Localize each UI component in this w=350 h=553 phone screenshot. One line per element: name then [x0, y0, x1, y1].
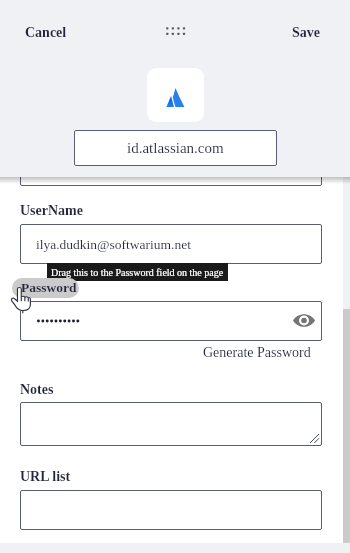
button[interactable]: Generate Password: [203, 345, 311, 361]
staticText: Save: [292, 25, 320, 41]
button[interactable]: [20, 150, 322, 186]
staticText: id.atlassian.com: [127, 140, 224, 157]
button[interactable]: Drag handle: [163, 18, 188, 43]
staticText: Drag this to the Password field on the p…: [51, 267, 224, 278]
button[interactable]: [20, 402, 322, 446]
button[interactable]: Password: [12, 278, 79, 298]
staticText: Cancel: [25, 25, 67, 41]
button[interactable]: [20, 490, 322, 530]
staticText: Password: [21, 280, 77, 295]
staticText: ilya.dudkin@softwarium.net: [36, 237, 191, 252]
staticText: URL list: [20, 469, 71, 485]
staticText: UserName: [20, 203, 83, 219]
staticText: Password: [20, 280, 78, 296]
button[interactable]: ilya.dudkin@softwarium.net: [20, 224, 322, 264]
button[interactable]: [147, 68, 204, 122]
button[interactable]: Show password: [20, 301, 322, 341]
button[interactable]: Save: [292, 25, 320, 41]
button[interactable]: Cancel: [25, 25, 67, 41]
button[interactable]: id.atlassian.com: [74, 130, 277, 166]
button[interactable]: Show password: [291, 307, 317, 333]
staticText: Notes: [20, 382, 54, 398]
staticText: Generate Password: [203, 345, 311, 361]
